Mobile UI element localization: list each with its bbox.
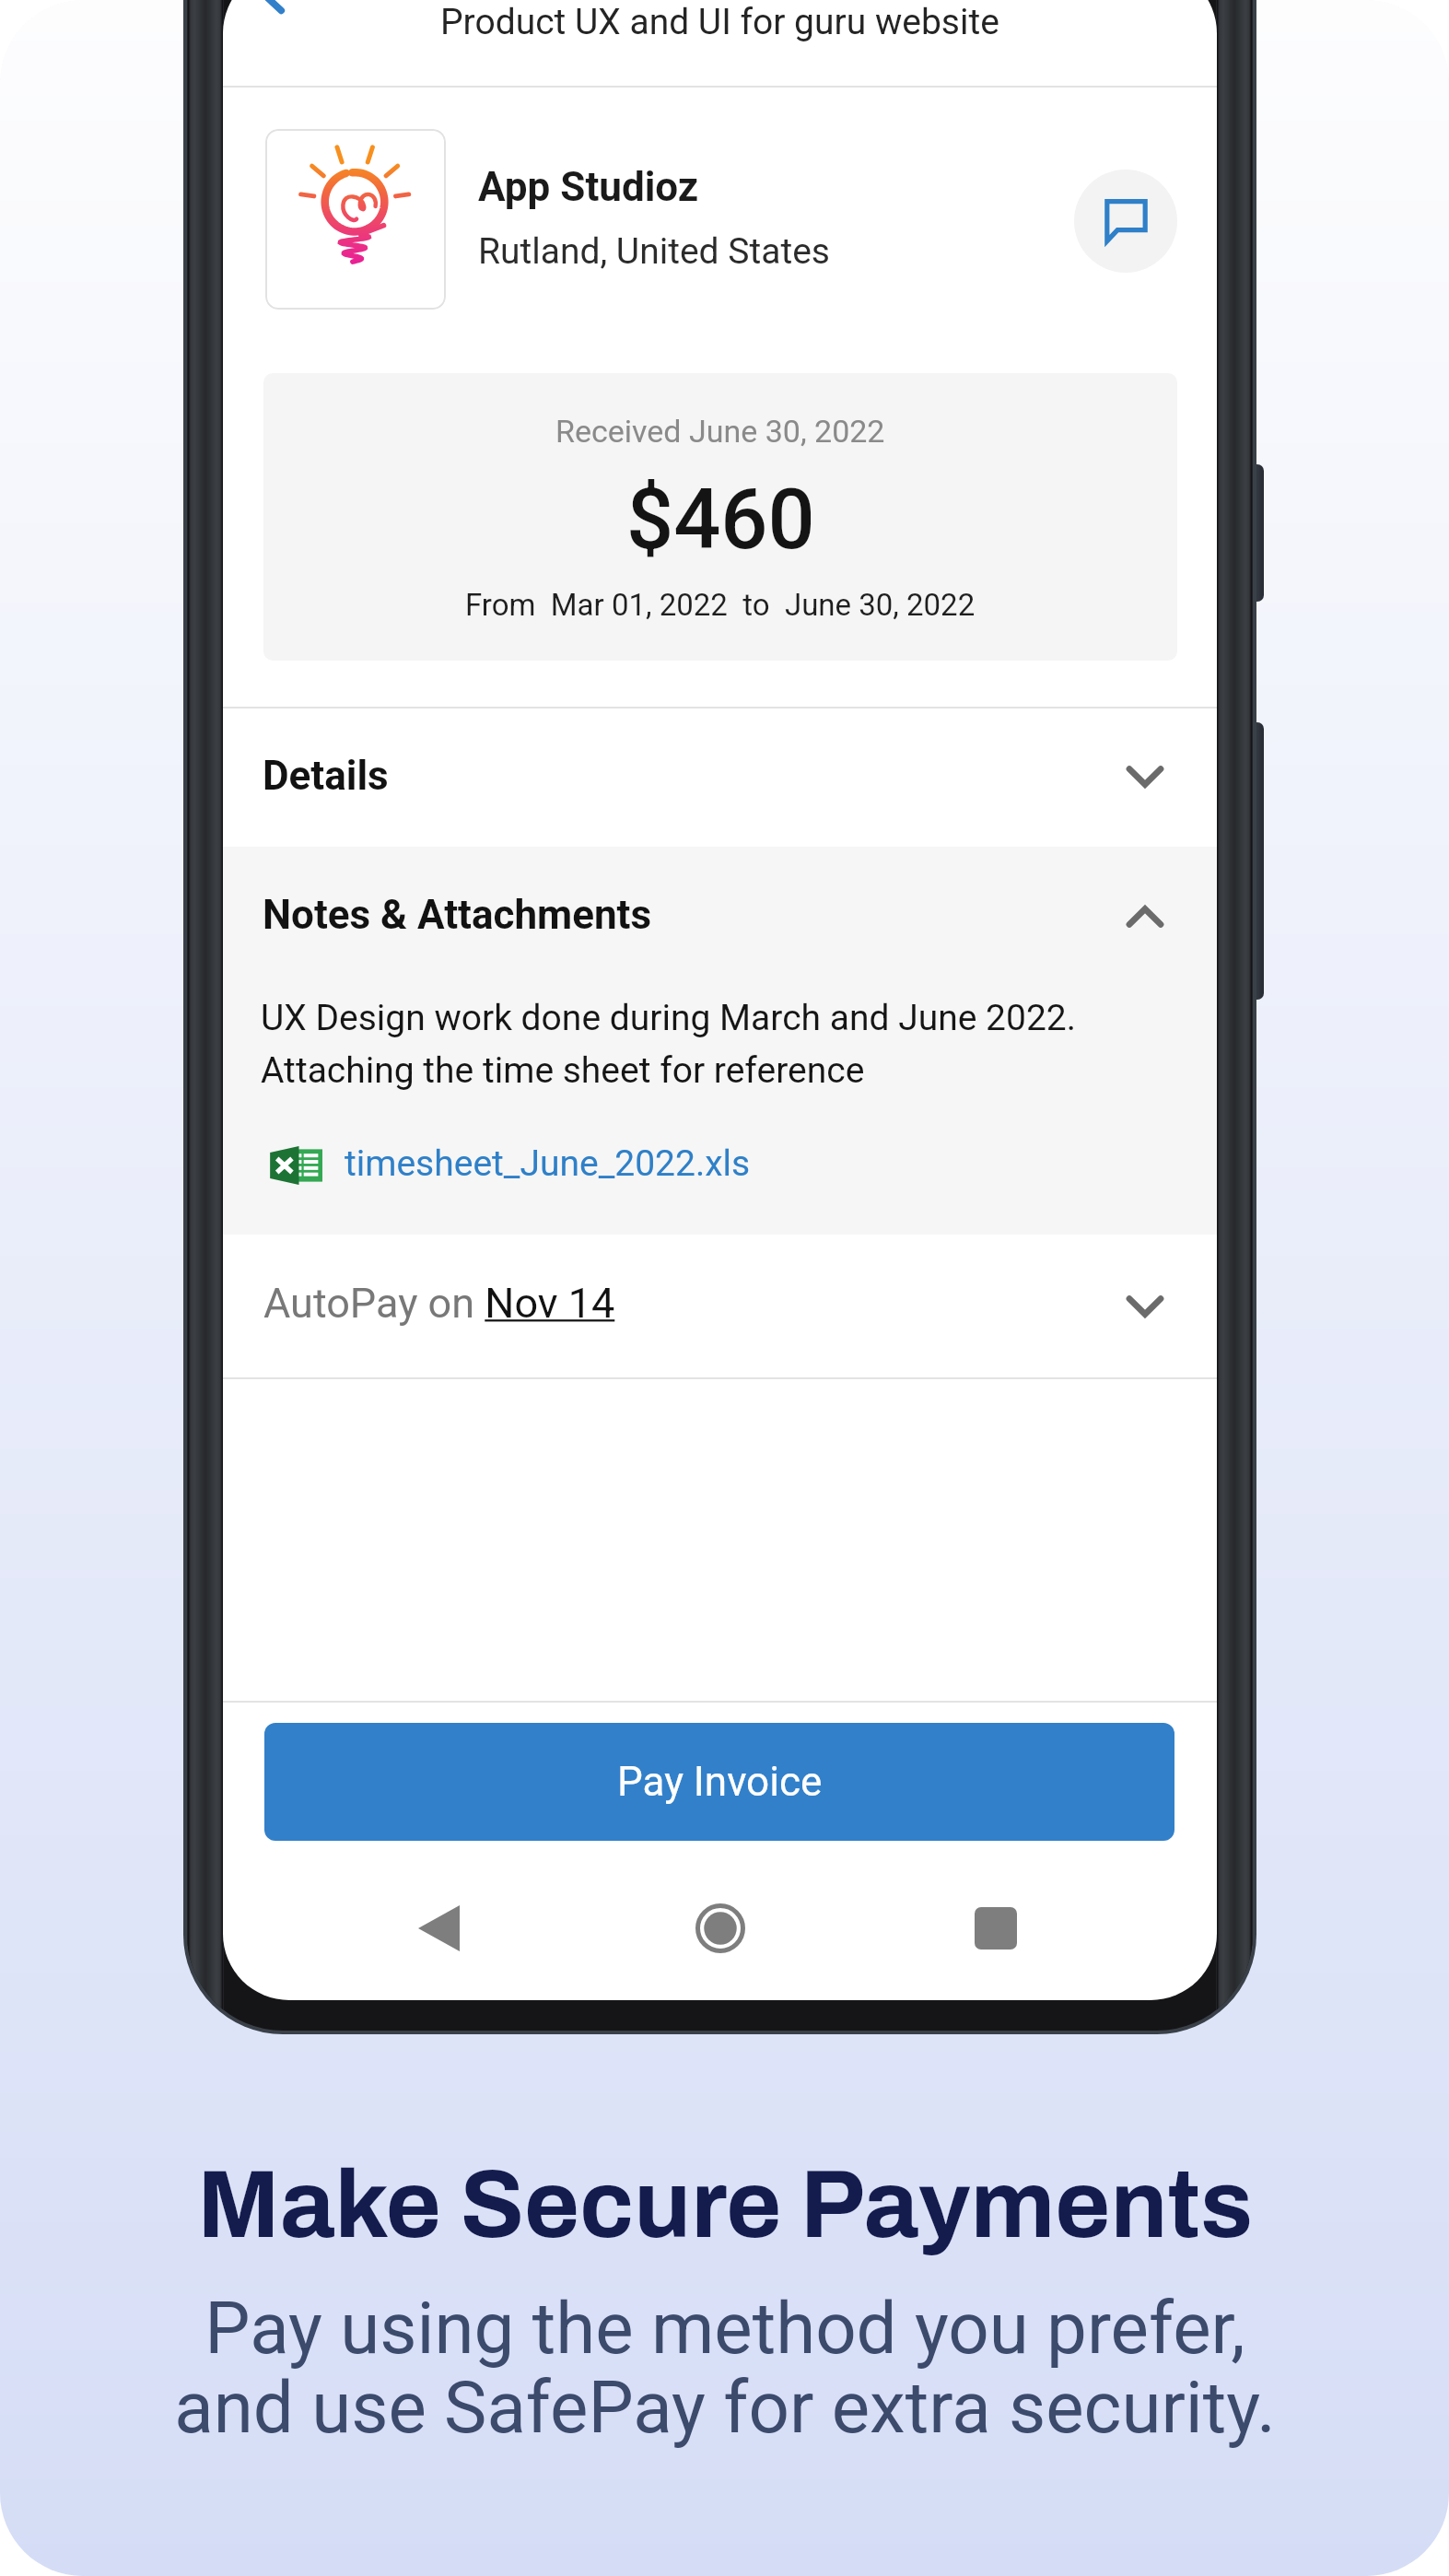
staticText: UX Design work done during March and Jun…: [261, 997, 1077, 1092]
staticText: Received June 30, 2022: [555, 413, 885, 450]
button[interactable]: Message vendor: [1074, 170, 1177, 273]
button[interactable]: App Studioz: [223, 86, 1217, 373]
staticText: $460: [626, 472, 815, 568]
button[interactable]: Notes & Attachments: [223, 847, 1217, 987]
staticText: From Mar 01, 2022 to June 30, 2022: [465, 587, 976, 623]
button[interactable]: Back: [223, 0, 289, 12]
button[interactable]: Recent apps: [922, 1869, 1069, 1987]
staticText: Product UX and UI for guru website: [440, 1, 999, 43]
button[interactable]: Pay Invoice: [264, 1723, 1174, 1841]
staticText: App Studioz: [478, 163, 699, 211]
staticText: Make Secure Payments: [197, 2154, 1253, 2257]
button[interactable]: Back: [368, 1869, 515, 1987]
button[interactable]: AutoPay on Nov 14: [223, 1235, 1217, 1377]
staticText: AutoPay on Nov 14: [263, 1279, 615, 1328]
staticText: Rutland, United States: [478, 230, 830, 273]
staticText: Details: [263, 752, 389, 800]
button[interactable]: timesheet_June_2022.xls: [265, 1128, 781, 1188]
staticText: Notes & Attachments: [263, 891, 652, 939]
staticText: timesheet_June_2022.xls: [345, 1142, 751, 1185]
staticText: Pay Invoice: [617, 1758, 823, 1806]
staticText: Pay using the method you prefer, and use…: [174, 2287, 1276, 2450]
button[interactable]: Details: [223, 707, 1217, 847]
button[interactable]: Home: [646, 1869, 795, 1987]
